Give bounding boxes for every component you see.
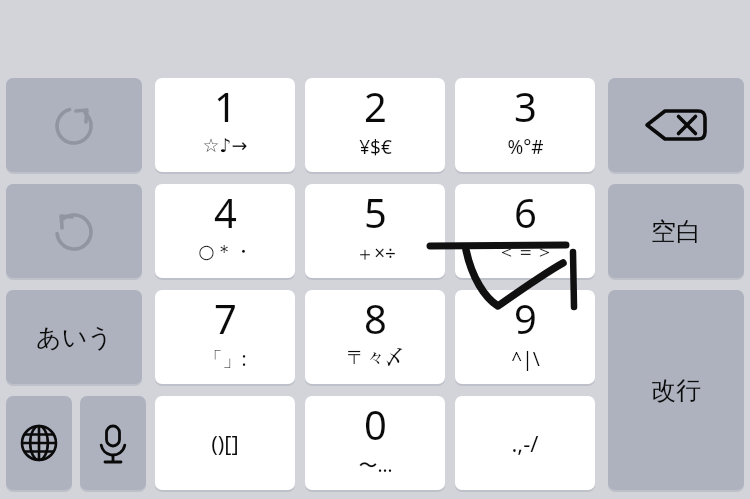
button[interactable]: 4 — [155, 184, 295, 278]
button[interactable]: 1 — [155, 78, 295, 172]
staticText: 3 — [514, 79, 537, 133]
staticText: 6 — [514, 185, 537, 239]
staticText: 5 — [364, 185, 387, 239]
button[interactable]: 2 — [305, 78, 445, 172]
staticText: ○＊・ — [198, 240, 253, 264]
button[interactable]: 改行 — [608, 290, 744, 490]
staticText: ☆♪→ — [202, 134, 248, 156]
button[interactable]: 7 — [155, 290, 295, 384]
staticText: %°# — [507, 134, 544, 160]
staticText: 1 — [214, 79, 237, 133]
staticText: ＋×÷ — [355, 240, 396, 266]
button[interactable]: Undo — [6, 184, 142, 278]
staticText: 8 — [364, 291, 387, 345]
button[interactable]: 空白 — [608, 184, 744, 278]
button[interactable]: Redo — [6, 78, 142, 172]
staticText: あいう — [36, 322, 113, 353]
staticText: ()[] — [211, 428, 239, 458]
staticText: 4 — [214, 185, 237, 239]
button[interactable]: Voice input — [80, 396, 146, 490]
button[interactable]: あいう — [6, 290, 142, 384]
staticText: 0 — [364, 397, 387, 451]
staticText: 「」: — [203, 346, 247, 372]
button[interactable]: 0 — [305, 396, 445, 490]
button[interactable]: 3 — [455, 78, 595, 172]
button[interactable]: Delete — [608, 78, 744, 172]
button[interactable]: Change language — [6, 396, 72, 490]
staticText: 改行 — [651, 375, 701, 406]
staticText: ＜＝＞ — [497, 240, 554, 264]
button[interactable]: 8 — [305, 290, 445, 384]
staticText: 2 — [364, 79, 387, 133]
button[interactable]: .,-/ — [455, 396, 595, 490]
button[interactable]: 6 — [455, 184, 595, 278]
staticText: .,-/ — [511, 428, 539, 458]
staticText: 〜… — [358, 452, 393, 478]
button[interactable]: 5 — [305, 184, 445, 278]
staticText: ^|\ — [511, 346, 540, 372]
staticText: 空白 — [651, 216, 701, 247]
staticText: 〒々〆 — [347, 346, 404, 370]
staticText: 9 — [514, 291, 537, 345]
button[interactable]: 9 — [455, 290, 595, 384]
button[interactable]: ()[] — [155, 396, 295, 490]
staticText: ¥$€ — [359, 134, 392, 160]
staticText: 7 — [214, 291, 237, 345]
